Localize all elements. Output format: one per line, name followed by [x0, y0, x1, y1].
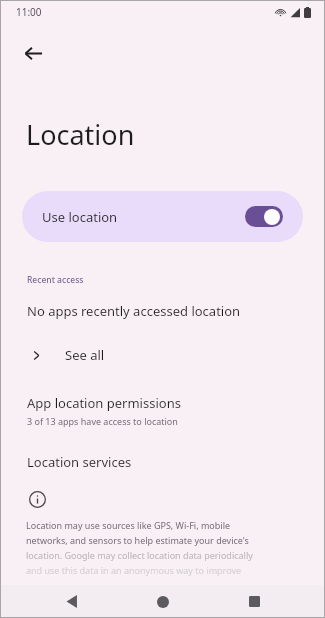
staticText: Location services	[27, 453, 132, 471]
staticText: and use this data in an anonymous way to…	[26, 564, 242, 576]
button[interactable]: No apps recently accessed location	[0, 300, 325, 322]
staticText: App location permissions	[27, 394, 181, 412]
staticText: networks, and sensors to help estimate y…	[26, 534, 249, 546]
staticText: Recent access	[27, 274, 84, 286]
button[interactable]: App location permissions	[0, 392, 325, 429]
other: Information	[27, 489, 47, 509]
staticText: Use location	[42, 208, 245, 226]
staticText: See all	[65, 346, 105, 364]
staticText: location. Google may collect location da…	[26, 549, 253, 561]
button[interactable]: Use location	[22, 191, 303, 242]
staticText: No apps recently accessed location	[27, 302, 241, 320]
button[interactable]: Location services	[0, 451, 325, 473]
button[interactable]: Back	[14, 34, 52, 72]
staticText: 11:00	[16, 5, 42, 19]
staticText: Location may use sources like GPS, Wi-Fi…	[26, 519, 231, 531]
staticText: Location	[26, 116, 135, 153]
button[interactable]: Recent apps	[234, 585, 274, 618]
button[interactable]: Home	[143, 585, 183, 618]
button[interactable]: Back	[51, 585, 91, 618]
button[interactable]: See all	[0, 342, 325, 368]
staticText: 3 of 13 apps have access to location	[27, 415, 178, 427]
